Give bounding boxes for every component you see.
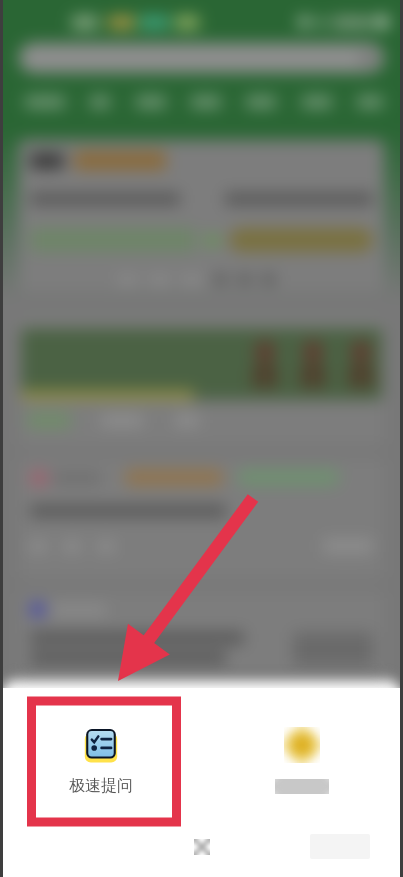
button[interactable]: Close: [186, 831, 218, 863]
staticText: 极速提问: [69, 776, 133, 796]
button[interactable]: More options: [255, 719, 349, 800]
button[interactable]: 极速提问: [49, 719, 153, 802]
